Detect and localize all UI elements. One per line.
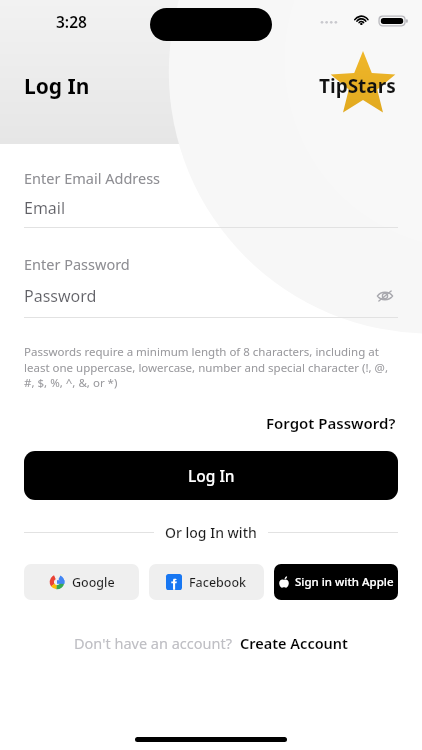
button[interactable]: Email [24, 197, 398, 228]
staticText: Sign in with Apple [295, 574, 394, 590]
staticText: Enter Password [24, 254, 130, 274]
staticText: Forgot Password? [266, 413, 396, 433]
staticText: Passwords require a minimum length of 8 … [24, 344, 398, 390]
button[interactable]: Create Account [239, 630, 349, 656]
button[interactable]: Password [24, 283, 398, 318]
staticText: Create Account [240, 633, 348, 653]
button[interactable]: Google [24, 564, 139, 600]
staticText: 3:28 [56, 11, 87, 32]
staticText: Password [24, 285, 97, 307]
staticText: Don't have an account? [74, 633, 232, 653]
staticText: Or log In with [165, 523, 257, 542]
staticText: Log In [188, 465, 235, 486]
button[interactable]: Facebook [149, 564, 264, 600]
button[interactable]: Forgot Password? [264, 410, 398, 436]
staticText: Facebook [189, 574, 247, 591]
staticText: Log In [24, 72, 90, 101]
staticText: TipStars [319, 73, 396, 99]
button[interactable]: Log In [24, 451, 398, 500]
staticText: Google [72, 574, 115, 591]
staticText: Email [24, 197, 66, 219]
button[interactable]: Sign in with Apple [274, 564, 398, 600]
button[interactable]: Show password [372, 283, 398, 309]
staticText: Enter Email Address [24, 168, 161, 188]
